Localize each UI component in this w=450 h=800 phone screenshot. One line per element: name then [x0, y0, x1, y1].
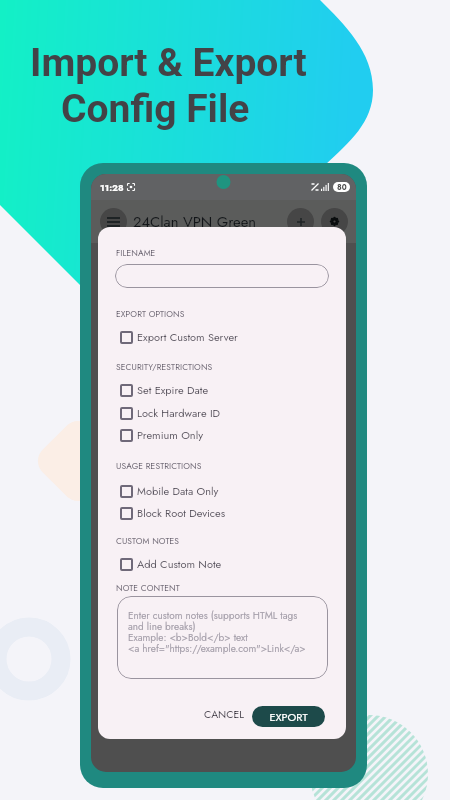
staticText: CANCEL	[204, 707, 244, 722]
staticText: Set Expire Date	[137, 382, 209, 398]
button[interactable]	[117, 596, 328, 679]
button[interactable]: Settings	[321, 208, 348, 235]
staticText: 24Clan VPN Green	[133, 211, 257, 232]
staticText: EXPORT	[269, 709, 308, 725]
staticText: Config File	[61, 86, 250, 132]
button[interactable]: EXPORT	[252, 706, 325, 727]
staticText: Lock Hardware ID	[137, 405, 221, 421]
button[interactable]: Add	[287, 208, 314, 235]
staticText: USAGE RESTRICTIONS	[116, 460, 202, 472]
staticText: Mobile Data Only	[137, 483, 219, 499]
button[interactable]: Menu	[100, 208, 127, 235]
staticText: Premium Only	[137, 427, 204, 443]
button[interactable]: Add Custom Note	[116, 553, 328, 575]
staticText: FILENAME	[116, 247, 156, 259]
button[interactable]: Premium Only	[116, 424, 328, 446]
staticText: EXPORT OPTIONS	[116, 308, 185, 320]
button[interactable]: Mobile Data Only	[116, 480, 328, 502]
button[interactable]: CANCEL	[201, 704, 247, 725]
staticText: SECURITY/RESTRICTIONS	[116, 361, 213, 373]
staticText: Import & Export	[30, 40, 307, 86]
button[interactable]: Set Expire Date	[116, 379, 328, 401]
staticText: Enter custom notes (supports HTML tags a…	[128, 608, 306, 656]
staticText: 80	[337, 182, 347, 192]
button[interactable]: Block Root Devices	[116, 502, 328, 524]
staticText: 11:28	[100, 181, 124, 194]
staticText: Add Custom Note	[137, 556, 222, 572]
staticText: CUSTOM NOTES	[116, 535, 180, 547]
button[interactable]: Export Custom Server	[116, 326, 328, 348]
staticText: NOTE CONTENT	[116, 582, 180, 594]
button[interactable]: Lock Hardware ID	[116, 402, 328, 424]
staticText: Block Root Devices	[137, 505, 226, 521]
staticText: Export Custom Server	[137, 329, 238, 345]
button[interactable]	[115, 264, 329, 288]
